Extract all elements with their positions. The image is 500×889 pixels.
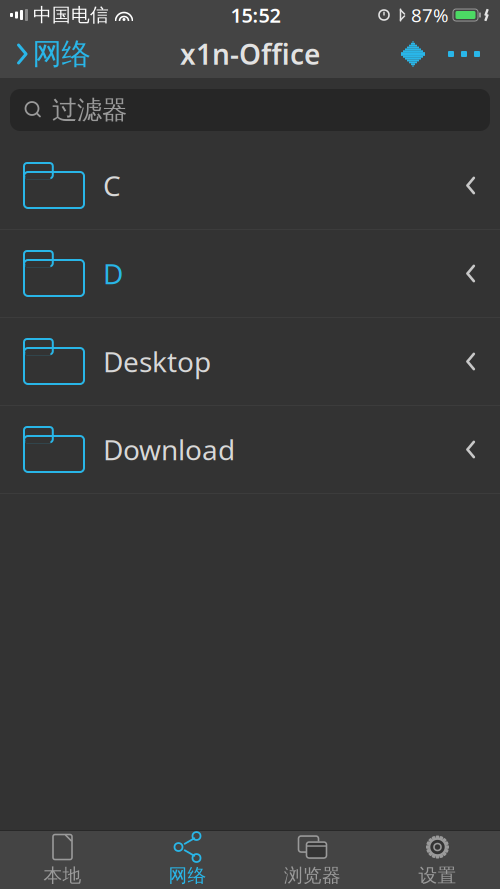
button[interactable]: 本地 — [0, 831, 125, 889]
button[interactable]: 浏览器 — [250, 831, 375, 889]
button[interactable]: More — [434, 31, 494, 77]
staticText: 本地 — [43, 864, 81, 887]
button[interactable]: Download — [0, 406, 500, 494]
staticText: 15:52 — [230, 2, 280, 28]
staticText: Download — [103, 431, 235, 468]
staticText: 浏览器 — [284, 864, 341, 887]
staticText: 网络 — [168, 864, 206, 887]
button[interactable]: C — [0, 142, 500, 230]
staticText: x1n-Office — [180, 35, 320, 73]
staticText: 87% — [411, 3, 449, 27]
staticText: C — [103, 167, 121, 204]
button[interactable]: 网络 — [125, 831, 250, 889]
staticText: 中国电信 — [33, 3, 109, 26]
button[interactable]: Play — [392, 31, 434, 77]
button[interactable]: D — [0, 230, 500, 318]
button[interactable]: 过滤器 — [10, 89, 490, 131]
staticText: 网络 — [32, 36, 90, 72]
button[interactable]: Desktop — [0, 318, 500, 406]
staticText: D — [103, 255, 123, 292]
staticText: Desktop — [103, 343, 211, 380]
staticText: 过滤器 — [52, 94, 127, 125]
button[interactable]: 设置 — [375, 831, 500, 889]
staticText: 设置 — [418, 864, 456, 887]
button[interactable]: 网络 — [6, 31, 100, 77]
